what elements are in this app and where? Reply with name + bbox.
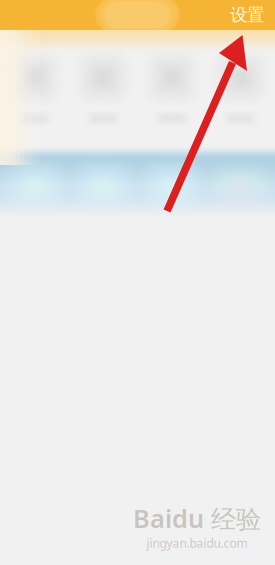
staticText: Baidu 经验	[133, 501, 261, 535]
button[interactable]: Shortcut	[143, 48, 201, 126]
button[interactable]: 设置	[219, 0, 275, 30]
button[interactable]: Shortcut	[5, 48, 63, 126]
staticText: jingyan.baidu.com	[146, 535, 247, 551]
button[interactable]: Shortcut	[74, 48, 132, 126]
staticText: 设置	[230, 4, 264, 26]
button[interactable]: Shortcut	[212, 48, 270, 126]
